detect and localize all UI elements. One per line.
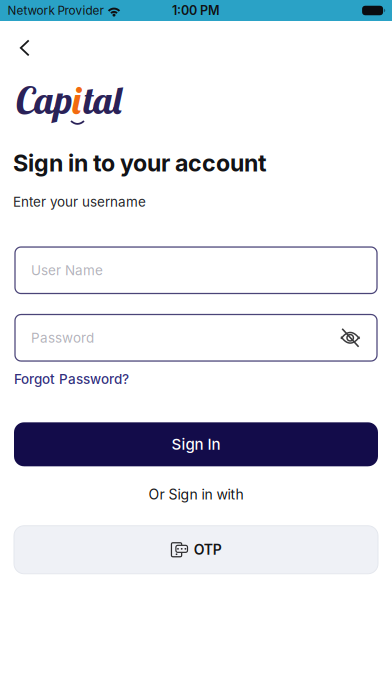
staticText: OTP — [194, 541, 222, 558]
staticText: tal — [83, 76, 123, 123]
staticText: Sign in to your account — [13, 149, 267, 177]
staticText: User Name — [31, 262, 103, 278]
staticText: Or Sign in with — [148, 486, 243, 503]
button[interactable]: Sign In — [14, 422, 378, 466]
staticText: Sign In — [171, 435, 220, 453]
staticText: 1:00 PM — [172, 3, 220, 18]
staticText: Cap — [15, 76, 72, 123]
staticText: Password — [31, 330, 94, 346]
button[interactable]: Show password — [340, 328, 360, 347]
button[interactable]: Forgot Password? — [14, 371, 129, 387]
button[interactable]: Back — [0, 21, 30, 56]
textField[interactable]: User Name — [15, 247, 377, 293]
staticText: Forgot Password? — [14, 371, 129, 387]
secureTextField[interactable]: Password — [15, 314, 377, 361]
button[interactable]: OTP — [14, 526, 378, 574]
staticText: i — [72, 76, 83, 123]
staticText: Enter your username — [13, 194, 146, 210]
staticText: Network Provider — [7, 3, 103, 18]
